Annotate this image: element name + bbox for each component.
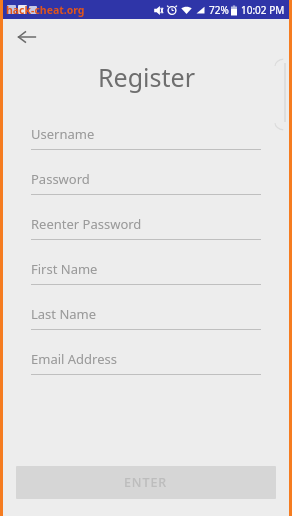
staticText: 72% xyxy=(209,3,229,17)
staticText: ENTER xyxy=(124,474,168,491)
button[interactable]: Back xyxy=(11,21,43,53)
staticText: Email Address xyxy=(31,350,117,368)
button[interactable]: Reenter Password xyxy=(31,211,261,256)
staticText: First Name xyxy=(31,260,98,278)
staticText: hack-cheat.org xyxy=(6,3,85,17)
staticText: Password xyxy=(31,170,90,188)
staticText: Last Name xyxy=(31,305,97,323)
button[interactable]: Email Address xyxy=(31,346,261,391)
staticText: Username xyxy=(31,125,95,143)
button[interactable]: Username xyxy=(31,121,261,166)
staticText: 10:02 PM xyxy=(241,3,285,17)
staticText: Register xyxy=(98,60,195,94)
staticText: Reenter Password xyxy=(31,215,142,233)
button[interactable]: Last Name xyxy=(31,301,261,346)
button[interactable]: First Name xyxy=(31,256,261,301)
button[interactable]: Password xyxy=(31,166,261,211)
